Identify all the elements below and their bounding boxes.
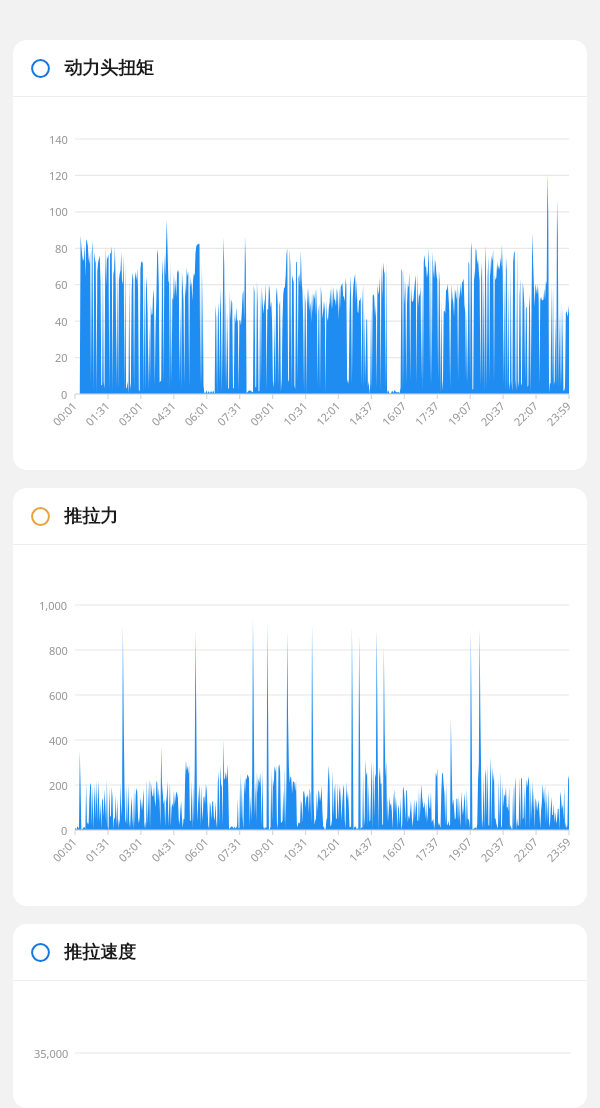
staticText: 动力头扭矩	[64, 57, 154, 80]
button[interactable]: 推拉速度	[13, 924, 587, 980]
other: 推拉力	[31, 507, 50, 526]
other: 推拉速度	[31, 943, 50, 962]
staticText: 推拉力	[64, 505, 118, 528]
button[interactable]: 推拉速度	[13, 924, 587, 1108]
button[interactable]: 推拉力	[13, 488, 587, 906]
other: 动力头扭矩	[31, 59, 50, 78]
button[interactable]: 动力头扭矩	[13, 40, 587, 96]
button[interactable]: 推拉力	[13, 488, 587, 544]
staticText: 推拉速度	[64, 941, 136, 964]
button[interactable]: 动力头扭矩	[13, 40, 587, 470]
